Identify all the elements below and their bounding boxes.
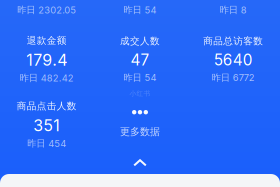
staticText: 退款金额 <box>27 35 67 47</box>
button[interactable]: 退款金额 <box>0 36 93 82</box>
button[interactable]: 成交人数 <box>93 36 186 82</box>
staticText: 昨日 8 <box>220 4 247 16</box>
staticText: 179.4 <box>26 50 67 70</box>
button[interactable]: 收起 <box>118 152 162 174</box>
staticText: 昨日 2302.05 <box>17 4 76 16</box>
staticText: 小红书 <box>129 89 150 98</box>
button[interactable]: 商品总访客数 <box>187 36 280 82</box>
staticText: 昨日 6772 <box>212 72 255 83</box>
staticText: 5640 <box>214 51 253 69</box>
staticText: 昨日 54 <box>123 72 156 83</box>
staticText: 商品总访客数 <box>203 35 263 47</box>
staticText: 商品点击人数 <box>17 100 77 112</box>
staticText: 351 <box>33 116 60 135</box>
button[interactable]: 商品点击人数 <box>0 102 93 148</box>
staticText: 昨日 482.42 <box>20 72 74 84</box>
staticText: 昨日 54 <box>123 4 156 16</box>
staticText: 47 <box>130 51 149 69</box>
staticText: 昨日 454 <box>27 137 66 149</box>
staticText: 成交人数 <box>120 35 160 47</box>
staticText: 更多数据 <box>120 125 160 138</box>
button[interactable]: 更多数据 <box>105 105 175 143</box>
